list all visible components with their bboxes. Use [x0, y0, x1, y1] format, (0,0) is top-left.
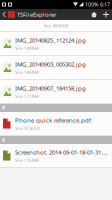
staticText: Size: 40.83 KB — [43, 23, 68, 28]
staticText: Size: 1.16 MB — [15, 157, 39, 163]
staticText: 100% — [85, 1, 98, 8]
staticText: IMG_20140903_005302.jpg — [15, 60, 86, 68]
button[interactable]: Back — [2, 11, 6, 18]
staticText: TSFileExplorer — [17, 10, 56, 18]
staticText: P — [2, 104, 5, 112]
button[interactable]: Phone quick reference.pdf — [0, 112, 112, 136]
button[interactable]: Screenshot_2014-09-01-18-01-31.png — [0, 144, 112, 168]
button[interactable]: IMG_20140903_005302.jpg — [0, 56, 112, 80]
button[interactable]: Home — [91, 11, 97, 17]
staticText: Screenshot_2014-09-01-18-01-31.png — [15, 148, 109, 156]
button[interactable]: IMG_20140825_112124.jpg — [0, 32, 112, 56]
staticText: Size: 97.36 KB — [15, 125, 40, 131]
staticText: IMG_20140825_112124.jpg — [15, 36, 86, 44]
staticText: Size: 1.86 MB — [15, 69, 39, 75]
staticText: 6:17 — [100, 1, 110, 8]
staticText: IMG_20140907_184158.jpg — [15, 84, 86, 92]
button[interactable]: IMG_20140907_184158.jpg — [0, 80, 112, 104]
staticText: Size: 1.08 MB — [15, 45, 39, 51]
button[interactable]: Add — [97, 11, 109, 17]
staticText: Phone quick reference.pdf — [15, 116, 91, 124]
staticText: Size: 1.71 MB — [15, 93, 39, 99]
staticText: S — [2, 136, 5, 144]
